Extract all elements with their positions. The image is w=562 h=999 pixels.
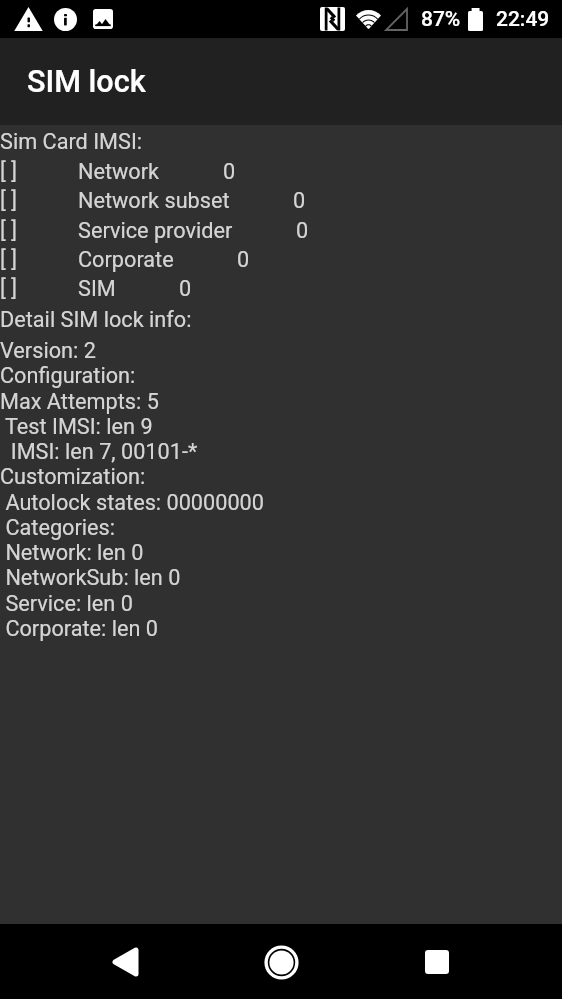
staticText: 0 <box>179 276 192 301</box>
staticText: Service: len 0 <box>0 591 133 616</box>
staticText: [ ] <box>0 159 17 184</box>
staticText: 0 <box>296 218 309 243</box>
staticText: Autolock states: 00000000 <box>0 490 264 515</box>
staticText: 0 <box>237 247 250 272</box>
staticText: [ ] <box>0 276 17 301</box>
staticText: SIM lock <box>27 64 146 100</box>
staticText: Test IMSI: len 9 <box>0 414 153 439</box>
staticText: Configuration: <box>0 363 136 388</box>
staticText: Network subset <box>78 188 230 213</box>
button[interactable]: Home <box>218 924 344 999</box>
staticText: Detail SIM lock info: <box>0 307 192 332</box>
button[interactable]: Back <box>62 924 188 999</box>
staticText: Version: 2 <box>0 338 96 363</box>
staticText: Service provider <box>78 218 233 243</box>
staticText: NetworkSub: len 0 <box>0 565 181 590</box>
staticText: 0 <box>223 159 236 184</box>
staticText: Network: len 0 <box>0 540 144 565</box>
staticText: IMSI: len 7, 00101-* <box>0 439 198 464</box>
staticText: Network <box>78 159 160 184</box>
staticText: 0 <box>293 188 306 213</box>
staticText: Categories: <box>0 515 116 540</box>
staticText: Corporate <box>78 247 174 272</box>
staticText: [ ] <box>0 218 17 243</box>
staticText: [ ] <box>0 247 17 272</box>
staticText: [ ] <box>0 188 17 213</box>
button[interactable]: Recent apps <box>374 924 500 999</box>
staticText: SIM <box>78 276 116 301</box>
staticText: Corporate: len 0 <box>0 616 159 641</box>
staticText: Customization: <box>0 464 146 489</box>
staticText: Sim Card IMSI: <box>0 129 143 154</box>
staticText: Max Attempts: 5 <box>0 389 159 414</box>
staticText: 87% <box>421 7 461 32</box>
staticText: 22:49 <box>496 7 550 32</box>
